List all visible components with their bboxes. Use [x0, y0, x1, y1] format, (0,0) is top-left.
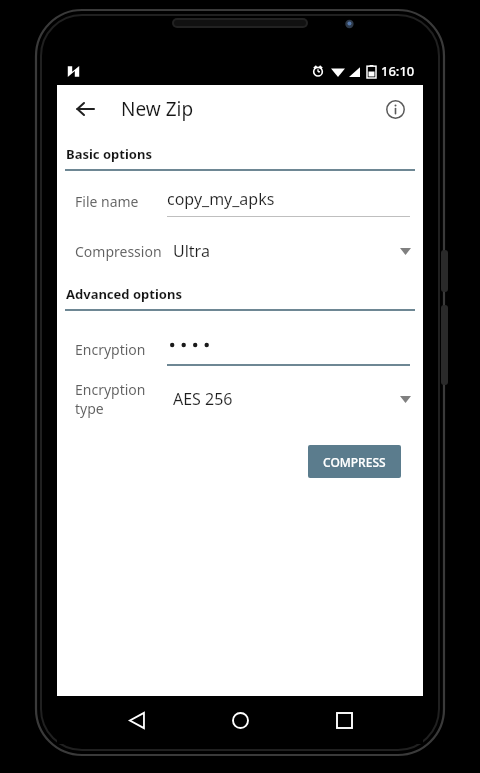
button[interactable]: Encryption type	[57, 379, 423, 419]
button[interactable]: Compression	[57, 231, 423, 271]
staticText: New Zip	[121, 96, 194, 122]
button[interactable]: Recent apps	[320, 696, 368, 744]
staticText: Basic options	[66, 145, 152, 163]
button[interactable]: Home	[216, 696, 264, 744]
staticText: copy_my_apks	[167, 188, 275, 210]
staticText: File name	[75, 192, 139, 211]
button[interactable]: Back	[113, 696, 161, 744]
staticText: Encryption type	[75, 380, 167, 418]
staticText: Ultra	[173, 240, 210, 262]
button[interactable]: Back	[65, 89, 105, 129]
staticText: Compression	[75, 242, 162, 261]
button[interactable]: Info	[375, 89, 415, 129]
button[interactable]: COMPRESS	[308, 445, 401, 478]
staticText: AES 256	[173, 388, 233, 410]
staticText: 16:10	[381, 62, 415, 80]
staticText: Advanced options	[66, 285, 182, 303]
staticText: Encryption	[75, 340, 146, 359]
staticText: COMPRESS	[323, 454, 386, 470]
button[interactable]: Encryption	[57, 329, 423, 369]
button[interactable]: File name	[57, 181, 423, 221]
